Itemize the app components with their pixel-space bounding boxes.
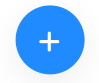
- button[interactable]: Add: [16, 5, 85, 74]
